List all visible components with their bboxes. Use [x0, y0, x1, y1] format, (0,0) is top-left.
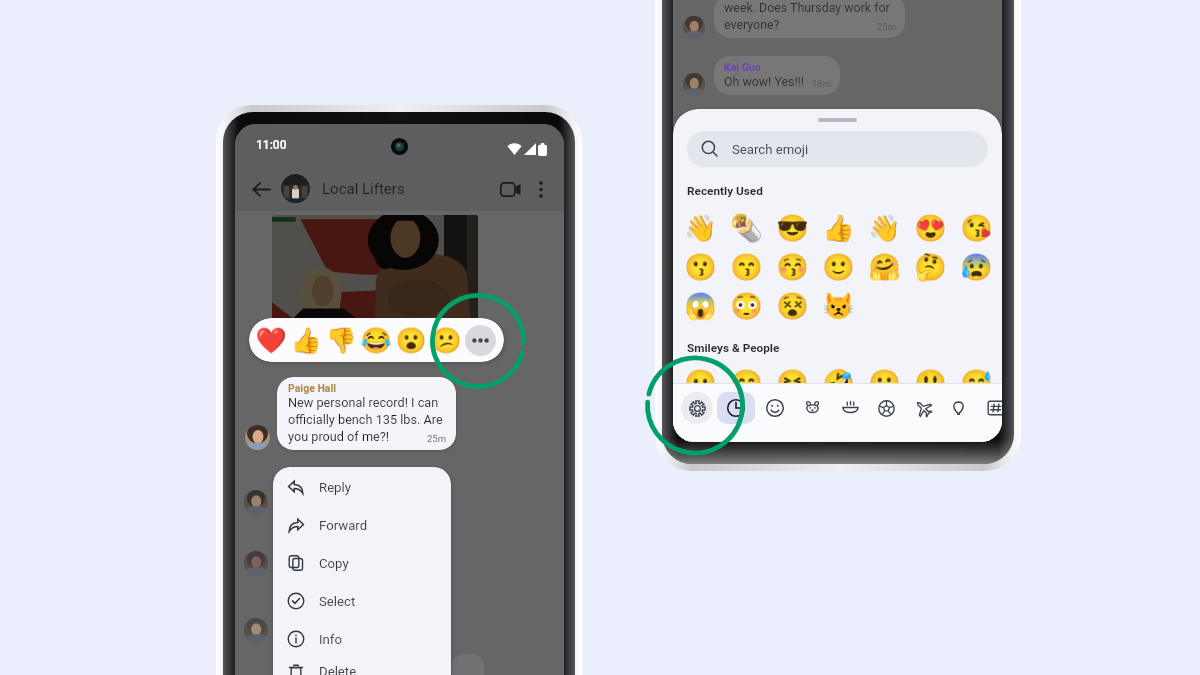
- staticText: 😵: [776, 291, 809, 322]
- staticText: 🙂: [822, 252, 855, 283]
- staticText: Select: [319, 594, 356, 609]
- staticText: 😮: [395, 326, 427, 355]
- staticText: 25m: [877, 21, 897, 32]
- staticText: 😂: [360, 326, 392, 355]
- staticText: 25m: [427, 433, 447, 444]
- button[interactable]: Back: [245, 173, 277, 205]
- button[interactable]: More reactions: [465, 325, 496, 356]
- staticText: 🤣: [822, 368, 855, 399]
- button[interactable]: 😚: [769, 248, 815, 286]
- staticText: 👍: [290, 326, 322, 355]
- staticText: week. Does Thursday work for everyone?: [724, 0, 897, 32]
- staticText: 😱: [684, 291, 717, 322]
- staticText: Forward: [319, 518, 368, 533]
- staticText: 😎: [776, 213, 809, 244]
- button[interactable]: 😍: [907, 209, 953, 247]
- staticText: Oh wow! Yes!!!: [724, 74, 804, 89]
- staticText: New personal record! I can officially be…: [288, 395, 447, 444]
- staticText: 🤔: [914, 252, 947, 283]
- button[interactable]: Select: [273, 582, 451, 620]
- button[interactable]: [281, 174, 310, 203]
- button[interactable]: 🤣: [815, 364, 861, 402]
- staticText: Kai Guo: [724, 61, 761, 73]
- staticText: Delete: [319, 664, 357, 675]
- staticText: 😬: [868, 368, 901, 399]
- button[interactable]: 😄: [723, 364, 769, 402]
- button[interactable]: Animals: [793, 392, 831, 424]
- button[interactable]: 👍: [288, 321, 323, 359]
- button[interactable]: 🤗: [861, 248, 907, 286]
- staticText: 👋: [684, 213, 717, 244]
- staticText: 😘: [960, 213, 993, 244]
- button[interactable]: Delete: [273, 658, 451, 675]
- button[interactable]: 👋: [861, 209, 907, 247]
- button[interactable]: Video call: [495, 174, 525, 204]
- button[interactable]: Forward: [273, 506, 451, 544]
- staticText: 😶: [684, 368, 717, 399]
- button[interactable]: 👍: [815, 209, 861, 247]
- button[interactable]: 😂: [358, 321, 393, 359]
- button[interactable]: More options: [528, 176, 554, 202]
- staticText: 😙: [730, 252, 763, 283]
- button[interactable]: Paige Hall: [277, 377, 456, 450]
- staticText: Info: [319, 632, 342, 647]
- staticText: 😾: [822, 291, 855, 322]
- staticText: Smileys & People: [687, 341, 780, 355]
- button[interactable]: [272, 215, 478, 319]
- button[interactable]: Reply: [273, 468, 451, 506]
- staticText: 🌯: [730, 213, 763, 244]
- button[interactable]: ❤️: [253, 321, 288, 359]
- button[interactable]: 😕: [428, 321, 463, 359]
- button[interactable]: Smileys: [756, 392, 794, 424]
- button[interactable]: 👎: [323, 321, 358, 359]
- staticText: 😚: [776, 252, 809, 283]
- button[interactable]: 😆: [769, 364, 815, 402]
- button[interactable]: 😮: [393, 321, 428, 359]
- button[interactable]: 😵: [769, 287, 815, 325]
- staticText: 😳: [730, 291, 763, 322]
- staticText: Reply: [319, 480, 351, 495]
- button[interactable]: 😙: [723, 248, 769, 286]
- button[interactable]: Activities: [867, 392, 905, 424]
- button[interactable]: 🌯: [723, 209, 769, 247]
- staticText: 🤗: [868, 252, 901, 283]
- button[interactable]: 🙂: [815, 248, 861, 286]
- button[interactable]: 😶: [677, 364, 723, 402]
- staticText: ❤️: [255, 326, 287, 355]
- staticText: 😆: [776, 368, 809, 399]
- button[interactable]: 😅: [953, 364, 999, 402]
- button[interactable]: 😱: [677, 287, 723, 325]
- staticText: Paige Hall: [288, 382, 337, 394]
- button[interactable]: Symbols: [977, 392, 1002, 424]
- staticText: Recently Used: [687, 184, 763, 198]
- button[interactable]: Copy: [273, 544, 451, 582]
- staticText: 👍: [822, 213, 855, 244]
- staticText: Copy: [319, 556, 349, 571]
- button[interactable]: 👋: [677, 209, 723, 247]
- staticText: 18m: [812, 78, 832, 89]
- staticText: 😅: [960, 368, 993, 399]
- button[interactable]: 😳: [723, 287, 769, 325]
- staticText: 😰: [960, 252, 993, 283]
- button[interactable]: Info: [273, 620, 451, 658]
- button[interactable]: Food: [831, 392, 869, 424]
- button[interactable]: Search emoji: [687, 131, 988, 167]
- button[interactable]: 😰: [953, 248, 999, 286]
- button[interactable]: Objects: [939, 392, 977, 424]
- button[interactable]: Recently used: [717, 392, 755, 424]
- button[interactable]: 😘: [953, 209, 999, 247]
- staticText: 11:00: [256, 138, 287, 152]
- staticText: 😕: [430, 326, 462, 355]
- button[interactable]: Settings: [678, 392, 716, 424]
- button[interactable]: 🤔: [907, 248, 953, 286]
- button[interactable]: 😗: [677, 248, 723, 286]
- button[interactable]: 😬: [861, 364, 907, 402]
- button[interactable]: 😾: [815, 287, 861, 325]
- staticText: 👋: [868, 213, 901, 244]
- button[interactable]: 😎: [769, 209, 815, 247]
- staticText: Local Lifters: [322, 180, 405, 198]
- staticText: Search emoji: [732, 142, 809, 157]
- button[interactable]: 😃: [907, 364, 953, 402]
- staticText: 😍: [914, 213, 947, 244]
- button[interactable]: Travel: [904, 392, 942, 424]
